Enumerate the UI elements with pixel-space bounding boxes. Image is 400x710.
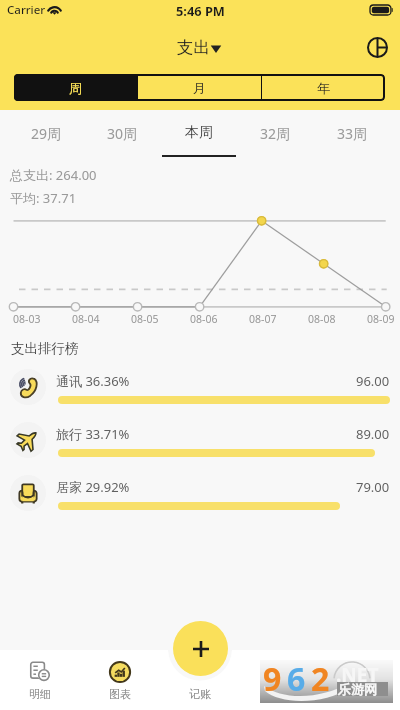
staticText: 记账 — [189, 687, 211, 701]
staticText: 89.00 — [356, 425, 390, 443]
button[interactable]: 我的 — [330, 650, 390, 710]
staticText: 月 — [193, 80, 206, 96]
staticText: 支出 — [177, 37, 210, 58]
staticText: 08-09 — [367, 312, 395, 326]
button[interactable]: 30周 — [84, 110, 160, 158]
staticText: 2 — [311, 657, 330, 700]
staticText: 08-07 — [249, 312, 277, 326]
staticText: .NET — [336, 662, 379, 688]
staticText: 居家 29.92% — [56, 478, 130, 496]
staticText: 08-05 — [131, 312, 159, 326]
staticText: 明细 — [29, 687, 51, 701]
staticText: 08-04 — [72, 312, 100, 326]
button[interactable]: 图表 — [90, 650, 150, 710]
staticText: 5:46 PM — [176, 2, 225, 19]
staticText: 平均: 37.71 — [10, 189, 77, 207]
staticText: 08-06 — [190, 312, 218, 326]
staticText: Carrier — [7, 2, 46, 18]
staticText: 图表 — [109, 687, 131, 701]
button[interactable]: 月 — [138, 74, 261, 101]
button[interactable]: Pie chart — [364, 34, 390, 60]
button[interactable]: 29周 — [8, 110, 84, 158]
button[interactable]: 居家 29.92% — [0, 466, 400, 519]
staticText: 33周 — [337, 124, 368, 143]
button[interactable]: 32周 — [237, 110, 314, 158]
staticText: 周 — [69, 80, 82, 96]
staticText: 32周 — [260, 124, 291, 143]
staticText: 总支出: 264.00 — [10, 166, 97, 184]
button[interactable]: 记账 — [170, 650, 230, 710]
staticText: 本周 — [185, 124, 213, 142]
staticText: 旅行 33.71% — [56, 425, 130, 443]
staticText: 79.00 — [356, 478, 390, 496]
button[interactable]: 年 — [262, 74, 385, 101]
button[interactable]: 支出 — [174, 34, 225, 61]
button[interactable]: 旅行 33.71% — [0, 413, 400, 466]
staticText: 支出排行榜 — [11, 340, 79, 357]
staticText: 乐游网 — [338, 681, 377, 697]
button[interactable]: Add record — [173, 621, 228, 676]
staticText: 年 — [317, 80, 330, 96]
staticText: 6 — [287, 657, 306, 700]
button[interactable]: 周 — [14, 74, 137, 101]
staticText: 9 — [263, 657, 282, 700]
button[interactable]: 通讯 36.36% — [0, 360, 400, 413]
button[interactable]: 明细 — [10, 650, 70, 710]
button[interactable]: 33周 — [314, 110, 391, 158]
button[interactable]: 本周 — [160, 110, 237, 158]
staticText: 08-08 — [308, 312, 336, 326]
staticText: 29周 — [31, 124, 62, 143]
staticText: 08-03 — [13, 312, 41, 326]
staticText: 设置 — [269, 687, 291, 701]
staticText: 30周 — [107, 124, 138, 143]
staticText: 我的 — [349, 687, 371, 701]
button[interactable]: 设置 — [250, 650, 310, 710]
staticText: 96.00 — [356, 372, 390, 390]
staticText: 通讯 36.36% — [56, 372, 130, 390]
